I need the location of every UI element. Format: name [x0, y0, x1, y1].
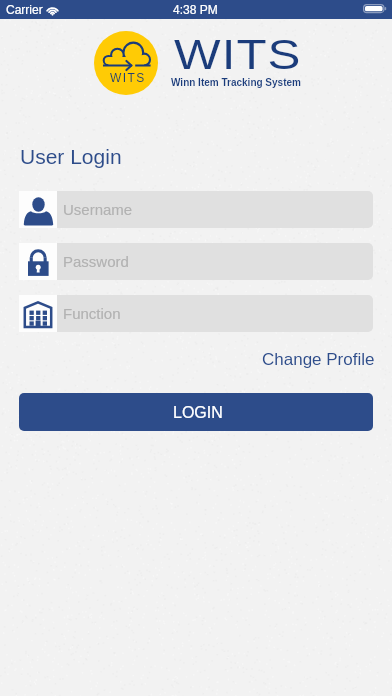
staticText: Password — [63, 253, 129, 270]
button[interactable]: Change Profile — [254, 344, 383, 375]
staticText: Change Profile — [262, 350, 375, 369]
staticText: 4:38 PM — [173, 3, 218, 16]
other: Password — [19, 243, 57, 280]
button[interactable]: Username — [19, 191, 373, 228]
button[interactable]: Function — [19, 295, 373, 332]
staticText: Username — [63, 201, 133, 218]
staticText: WITS — [110, 71, 146, 84]
staticText: User Login — [20, 145, 122, 168]
other: Username — [19, 191, 57, 228]
staticText: WITS — [174, 31, 302, 78]
staticText: Carrier — [6, 3, 43, 16]
staticText: Winn Item Tracking System — [171, 77, 301, 88]
staticText: Function — [63, 305, 121, 322]
staticText: LOGIN — [173, 404, 223, 422]
other: Function — [19, 295, 57, 332]
button[interactable]: LOGIN — [19, 393, 373, 431]
button[interactable]: Password — [19, 243, 373, 280]
